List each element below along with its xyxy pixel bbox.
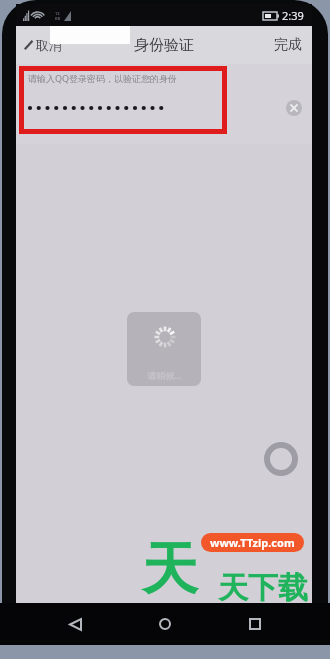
button[interactable]: 完成: [274, 36, 302, 54]
button[interactable]: 取消: [22, 37, 62, 53]
staticText: 请输入QQ登录密码，以验证您的身份: [28, 72, 178, 84]
staticText: 2:39: [282, 8, 304, 23]
staticText: 身份验证: [134, 36, 194, 55]
button[interactable]: [28, 103, 286, 113]
staticText: 取消: [36, 37, 62, 53]
button[interactable]: Back: [60, 609, 90, 639]
button[interactable]: Recents: [240, 609, 270, 639]
button[interactable]: Clear: [286, 100, 302, 116]
staticText: 天下载: [218, 569, 308, 607]
staticText: 请稍候…: [147, 369, 182, 381]
staticText: 天: [142, 534, 198, 605]
button[interactable]: Home: [150, 609, 180, 639]
staticText: 完成: [274, 36, 302, 54]
staticText: www.TTzip.com: [210, 535, 295, 550]
staticText: 13 KB: [55, 11, 61, 21]
button[interactable]: Floating action: [264, 442, 298, 476]
